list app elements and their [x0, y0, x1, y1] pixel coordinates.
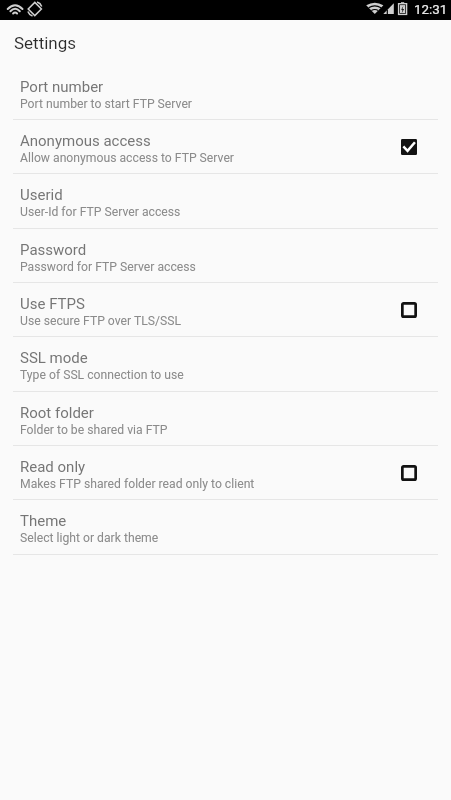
staticText: Port number to start FTP Server — [20, 97, 192, 111]
button[interactable]: Settings — [0, 20, 451, 66]
staticText: Select light or dark theme — [20, 531, 159, 545]
staticText: Password for FTP Server access — [20, 260, 196, 274]
staticText: Use secure FTP over TLS/SSL — [20, 314, 182, 328]
staticText: Folder to be shared via FTP — [20, 423, 168, 437]
staticText: Allow anonymous access to FTP Server — [20, 151, 234, 165]
staticText: Password — [20, 241, 87, 259]
staticText: Theme — [20, 512, 67, 530]
staticText: 12:31 — [414, 2, 448, 18]
button[interactable]: Theme — [0, 500, 451, 554]
staticText: Use FTPS — [20, 295, 85, 313]
button[interactable]: Anonymous access — [0, 120, 451, 174]
staticText: Anonymous access — [20, 132, 151, 150]
button[interactable]: Port number — [0, 66, 451, 120]
button[interactable]: Read only, not checked — [401, 465, 417, 481]
staticText: Makes FTP shared folder read only to cli… — [20, 477, 255, 491]
staticText: SSL mode — [20, 349, 88, 367]
button[interactable]: SSL mode — [0, 337, 451, 391]
button[interactable]: Use FTPS, not checked — [401, 302, 417, 318]
button[interactable]: Password — [0, 229, 451, 283]
button[interactable]: Userid — [0, 174, 451, 228]
button[interactable]: Anonymous access, checked — [401, 139, 417, 155]
button[interactable]: Root folder — [0, 392, 451, 446]
staticText: Port number — [20, 78, 104, 96]
button[interactable]: Use FTPS — [0, 283, 451, 337]
staticText: Userid — [20, 186, 63, 204]
staticText: Read only — [20, 458, 86, 476]
staticText: Settings — [14, 33, 77, 53]
staticText: Root folder — [20, 404, 94, 422]
staticText: User-Id for FTP Server access — [20, 205, 181, 219]
button[interactable]: Read only — [0, 446, 451, 500]
staticText: Type of SSL connection to use — [20, 368, 184, 382]
